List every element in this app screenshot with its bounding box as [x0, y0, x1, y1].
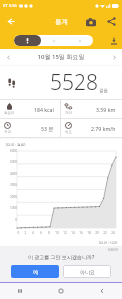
button[interactable]: Previous day [0, 49, 16, 65]
staticText: (단위 : 걸음) [6, 142, 26, 147]
staticText: NAVER [108, 248, 118, 252]
staticText: 12 [61, 231, 69, 235]
staticText: 2 [22, 231, 29, 235]
button[interactable]: Distance tab [67, 35, 93, 46]
button[interactable]: Camera [80, 11, 101, 32]
button[interactable]: 속도 [61, 119, 122, 137]
staticText: 20 [93, 231, 101, 235]
button[interactable]: Recent apps [0, 283, 40, 299]
button[interactable]: 예 [11, 265, 59, 278]
button[interactable]: Next day [106, 49, 122, 65]
staticText: 1000 [4, 206, 17, 210]
staticText: 통계 [55, 18, 68, 26]
button[interactable]: 거리 [61, 100, 122, 118]
staticText: 24 [109, 231, 117, 235]
staticText: 칼로리 [4, 111, 15, 115]
button[interactable]: Back [0, 11, 21, 32]
staticText: 걸음 [99, 88, 108, 94]
staticText: 0 [4, 218, 17, 222]
button[interactable]: Download [105, 32, 122, 49]
staticText: 18 [85, 231, 93, 235]
button[interactable]: 시간 [0, 119, 60, 137]
staticText: 10월 15일 화요일 [16, 53, 106, 61]
staticText: 53 분 [41, 125, 54, 132]
button[interactable]: Home [40, 283, 81, 299]
staticText: 예 [33, 269, 38, 275]
staticText: 4 [29, 231, 37, 235]
button[interactable]: Steps tab [14, 35, 41, 46]
staticText: (단위 : 시간) [99, 240, 118, 245]
staticText: KT 8:56 [3, 3, 17, 8]
staticText: 8 [45, 231, 53, 235]
staticText: 16 [77, 231, 85, 235]
staticText: 속도 [65, 130, 72, 134]
staticText: 6000 [4, 149, 17, 153]
staticText: 0 [15, 231, 22, 235]
staticText: 3.59 km [96, 106, 116, 113]
staticText: 5528 [50, 68, 98, 97]
staticText: 14 [69, 231, 77, 235]
staticText: 4000 [4, 172, 17, 176]
staticText: 2000 [4, 195, 17, 199]
staticText: 6 [37, 231, 45, 235]
staticText: 아니요 [80, 269, 95, 275]
button[interactable]: Back [81, 283, 122, 299]
staticText: 22 [101, 231, 109, 235]
staticText: 시간 [4, 130, 11, 134]
button[interactable]: 칼로리 [0, 100, 60, 118]
staticText: 5000 [4, 160, 17, 164]
button[interactable]: Share [101, 11, 122, 32]
staticText: 2.79 km/h [91, 125, 116, 132]
staticText: 184 kcal [34, 106, 54, 113]
staticText: 10 [53, 231, 61, 235]
staticText: 이 광고를 그만 보시겠습니까? [28, 254, 95, 261]
staticText: 거리 [65, 111, 72, 115]
button[interactable]: 아니요 [63, 265, 111, 278]
staticText: 3000 [4, 183, 17, 187]
